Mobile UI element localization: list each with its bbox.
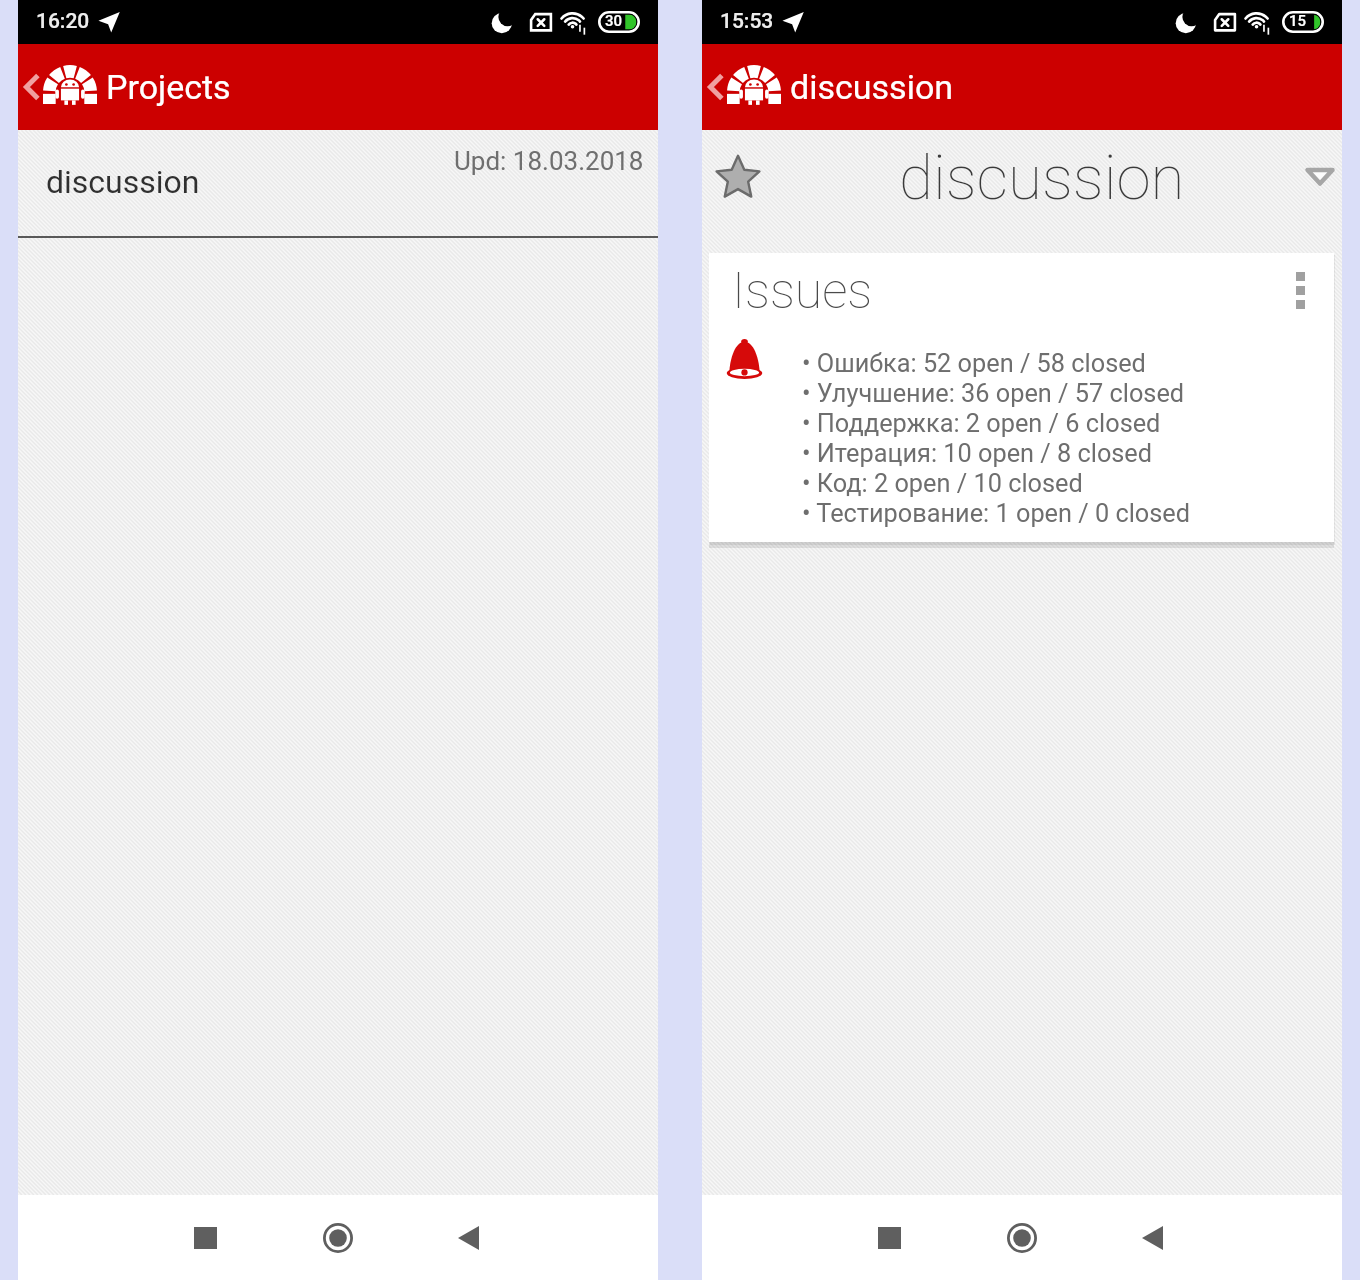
staticText: • Итерация: 10 open / 8 closed <box>802 439 1153 469</box>
button[interactable]: Recent apps <box>856 1205 922 1271</box>
button[interactable]: Issues <box>709 253 1334 542</box>
staticText: 30 <box>605 12 623 30</box>
staticText: 15:53 <box>720 9 774 34</box>
button[interactable]: More options <box>1280 270 1320 310</box>
staticText: • Улучшение: 36 open / 57 closed <box>802 379 1185 409</box>
button[interactable]: Expand <box>1296 152 1344 200</box>
staticText: Upd: 18.03.2018 <box>454 146 644 176</box>
button[interactable]: Projects <box>18 44 658 130</box>
staticText: • Тестирование: 1 open / 0 closed <box>802 499 1191 529</box>
button[interactable]: Home <box>305 1205 371 1271</box>
staticText: Issues <box>732 262 873 321</box>
staticText: • Код: 2 open / 10 closed <box>802 469 1083 499</box>
staticText: discussion <box>790 67 954 107</box>
staticText: discussion <box>899 141 1185 214</box>
staticText: 16:20 <box>36 9 90 34</box>
staticText: discussion <box>46 163 200 201</box>
button[interactable]: Home <box>989 1205 1055 1271</box>
staticText: Projects <box>106 67 231 107</box>
button[interactable]: Favorite <box>709 148 767 206</box>
button[interactable]: Back <box>435 1205 501 1271</box>
button[interactable]: Recent apps <box>172 1205 238 1271</box>
button[interactable]: discussion <box>702 44 1342 130</box>
staticText: • Ошибка: 52 open / 58 closed <box>802 349 1146 379</box>
staticText: • Поддержка: 2 open / 6 closed <box>802 409 1161 439</box>
staticText: 15 <box>1289 12 1307 30</box>
button[interactable]: Back <box>1119 1205 1185 1271</box>
button[interactable]: discussion <box>18 130 658 236</box>
